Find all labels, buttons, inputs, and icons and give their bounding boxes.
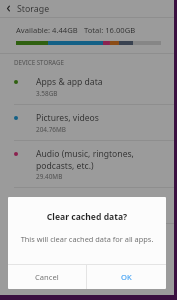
button[interactable]: Cancel xyxy=(8,265,86,289)
button[interactable]: Back xyxy=(0,0,17,17)
staticText: Pictures, videos xyxy=(36,112,99,124)
staticText: Storage xyxy=(17,3,50,15)
button[interactable]: Audio (music, ringtones, podcasts, etc.) xyxy=(0,141,174,188)
button[interactable]: Apps & app data xyxy=(0,69,174,105)
staticText: Other files xyxy=(36,231,79,243)
staticText: OK xyxy=(121,272,132,282)
staticText: 3.58GB xyxy=(36,89,58,98)
staticText: Cached data xyxy=(36,195,87,207)
staticText: 29.40MB xyxy=(36,172,63,181)
staticText: Apps & app data xyxy=(36,76,103,88)
staticText: 204.76MB xyxy=(36,125,66,134)
button[interactable]: OK xyxy=(87,265,166,289)
button[interactable]: Pictures, videos xyxy=(0,105,174,141)
staticText: 721.62MB xyxy=(36,208,66,217)
staticText: Available: 4.44GB xyxy=(16,25,78,35)
staticText: This will clear cached data for all apps… xyxy=(14,234,160,244)
staticText: Total: 16.00GB xyxy=(84,25,136,35)
staticText: Clear cached data? xyxy=(8,211,166,223)
staticText: Audio (music, ringtones, podcasts, etc.) xyxy=(36,148,162,171)
staticText: Cancel xyxy=(35,272,59,282)
button[interactable]: Cached data xyxy=(0,188,174,224)
button[interactable]: Other files xyxy=(0,224,174,259)
staticText: DEVICE STORAGE xyxy=(14,58,64,66)
